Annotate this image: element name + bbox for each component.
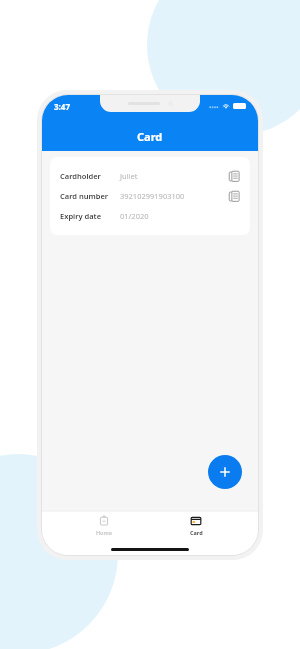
staticText: 3:47 (54, 101, 70, 112)
staticText: Card (190, 529, 203, 536)
staticText: Cardholder (60, 171, 101, 181)
button[interactable]: Card number (50, 186, 250, 206)
staticText: 392102991903100 (120, 191, 185, 201)
staticText: Expiry date (60, 211, 102, 221)
staticText: 01/2020 (120, 211, 149, 221)
staticText: Home (96, 529, 112, 536)
staticText: Juliet (120, 171, 138, 181)
button[interactable]: Home (74, 511, 134, 536)
button[interactable]: Copy Card number (226, 188, 242, 204)
button[interactable]: Card (166, 511, 226, 536)
staticText: Card (137, 129, 163, 144)
staticText: Card number (60, 191, 109, 201)
button[interactable]: Cardholder (50, 166, 250, 186)
button[interactable]: Expiry date (50, 206, 250, 226)
button[interactable]: Copy Cardholder (226, 168, 242, 184)
button[interactable]: Add card (208, 455, 242, 489)
